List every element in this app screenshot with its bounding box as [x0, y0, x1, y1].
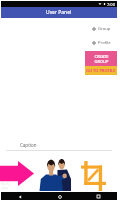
button[interactable]: GO TO PROFILE: [85, 66, 117, 75]
staticText: 7:00: [107, 2, 115, 7]
staticText: Profile: [98, 40, 111, 46]
button[interactable]: Group: [91, 26, 111, 32]
staticText: User Panel: [46, 9, 72, 16]
staticText: Tap to open: [1, 182, 10, 190]
button[interactable]: Home: [55, 192, 64, 200]
button[interactable]: Recents: [94, 192, 103, 200]
staticText: Caption: [20, 142, 37, 148]
staticText: CREATE GROUP: [94, 54, 109, 64]
staticText: GO TO PROFILE: [86, 68, 116, 73]
button[interactable]: Profile: [91, 40, 111, 46]
button[interactable]: CREATE GROUP: [85, 51, 117, 66]
button[interactable]: Back: [15, 192, 24, 200]
button[interactable]: Crop: [81, 161, 106, 191]
staticText: Group: [98, 26, 111, 32]
